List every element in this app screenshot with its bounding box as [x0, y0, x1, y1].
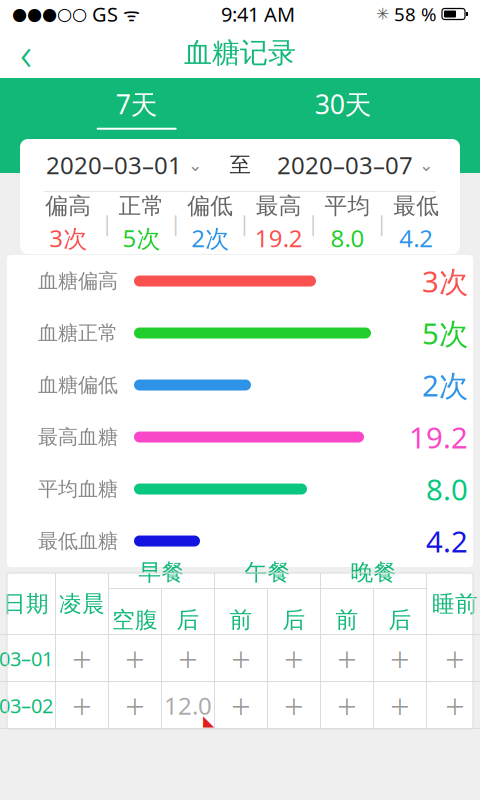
staticText: ●●●○○ — [12, 4, 87, 24]
staticText: 4.2 — [426, 521, 468, 560]
button[interactable]: 2020–03–07 — [273, 149, 438, 181]
button[interactable]: Back — [0, 28, 52, 78]
staticText: + — [445, 635, 465, 681]
button[interactable]: + — [109, 682, 161, 729]
staticText: 空腹 — [112, 606, 158, 634]
staticText: 最高血糖 — [38, 425, 118, 449]
staticText: 19.2 — [409, 417, 468, 456]
staticText: + — [72, 682, 92, 728]
button[interactable]: 30天 — [273, 77, 413, 139]
button[interactable]: 2020–03–01 — [42, 149, 207, 181]
staticText: + — [284, 682, 304, 728]
staticText: 后 — [282, 606, 305, 634]
staticText: 血糖记录 — [184, 36, 296, 70]
button[interactable]: + — [215, 635, 267, 682]
button[interactable]: + — [374, 682, 426, 729]
staticText: 最高 — [256, 192, 302, 220]
staticText: 8.0 — [330, 222, 364, 254]
staticText: 03–02 — [0, 692, 53, 719]
button[interactable]: 12.0 — [162, 682, 214, 729]
staticText: 58 % — [389, 2, 437, 26]
button[interactable]: + — [56, 635, 108, 682]
button[interactable]: + — [374, 635, 426, 682]
staticText: + — [390, 635, 410, 681]
button[interactable]: + — [427, 682, 480, 729]
staticText: | — [307, 209, 319, 237]
staticText: + — [72, 635, 92, 681]
staticText: | — [376, 209, 388, 237]
staticText: ◣ — [203, 712, 214, 729]
staticText: + — [125, 635, 145, 681]
staticText: 30天 — [315, 86, 372, 122]
staticText: 凌晨 — [59, 590, 105, 618]
staticText: 血糖偏高 — [38, 269, 118, 293]
staticText: 血糖偏低 — [38, 373, 118, 397]
staticText: 3次 — [422, 261, 468, 300]
staticText: | — [101, 209, 113, 237]
button[interactable]: + — [215, 682, 267, 729]
staticText: 7天 — [116, 86, 158, 122]
staticText: 03–01 — [0, 645, 53, 672]
staticText: 晚餐 — [350, 559, 396, 586]
staticText: 4.2 — [399, 222, 433, 254]
staticText: ✳ — [376, 5, 389, 23]
staticText: 2次 — [191, 222, 229, 254]
staticText: + — [390, 682, 410, 728]
staticText: 早餐 — [138, 559, 184, 586]
staticText: + — [337, 635, 357, 681]
staticText: ⌄ — [419, 155, 434, 175]
staticText: 睡前 — [432, 590, 478, 618]
staticText: | — [238, 209, 250, 237]
staticText: 前 — [335, 606, 358, 634]
staticText: 血糖正常 — [38, 321, 118, 345]
staticText: + — [284, 635, 304, 681]
staticText: 9:41 AM — [221, 1, 295, 27]
staticText: 8.0 — [426, 469, 468, 508]
button[interactable]: + — [321, 682, 373, 729]
staticText: 2020–03–07 — [277, 149, 413, 181]
staticText: 最低 — [393, 192, 439, 220]
staticText: 平均血糖 — [38, 477, 118, 501]
staticText: 3次 — [49, 222, 87, 254]
staticText: 19.2 — [255, 222, 303, 254]
staticText: + — [231, 635, 251, 681]
staticText: 5次 — [122, 222, 160, 254]
staticText: | — [170, 209, 182, 237]
staticText: GS — [87, 1, 118, 27]
button[interactable]: + — [268, 682, 320, 729]
staticText: + — [445, 682, 465, 728]
button[interactable]: + — [109, 635, 161, 682]
staticText: + — [178, 635, 198, 681]
staticText: 2020–03–01 — [46, 149, 182, 181]
button[interactable]: + — [427, 635, 480, 682]
staticText: ᯤ — [118, 2, 140, 26]
staticText: 正常 — [118, 192, 164, 220]
staticText: + — [337, 682, 357, 728]
button[interactable]: 7天 — [67, 77, 207, 139]
button[interactable]: + — [321, 635, 373, 682]
staticText: 前 — [229, 606, 252, 634]
staticText: 偏低 — [187, 192, 233, 220]
staticText: 后 — [176, 606, 199, 634]
staticText: + — [125, 682, 145, 728]
staticText: 偏高 — [45, 192, 91, 220]
button[interactable]: + — [268, 635, 320, 682]
staticText: 最低血糖 — [38, 529, 118, 553]
staticText: ‹ — [20, 23, 32, 83]
staticText: 2次 — [422, 365, 468, 404]
staticText: 日期 — [3, 590, 49, 618]
staticText: 12.0 — [164, 690, 212, 721]
button[interactable]: + — [162, 635, 214, 682]
staticText: 平均 — [324, 192, 370, 220]
staticText: ⌄ — [188, 155, 203, 175]
staticText: 至 — [229, 152, 250, 178]
staticText: 午餐 — [244, 559, 290, 586]
staticText: + — [231, 682, 251, 728]
button[interactable]: + — [56, 682, 108, 729]
staticText: 后 — [388, 606, 411, 634]
staticText: 5次 — [422, 313, 468, 352]
